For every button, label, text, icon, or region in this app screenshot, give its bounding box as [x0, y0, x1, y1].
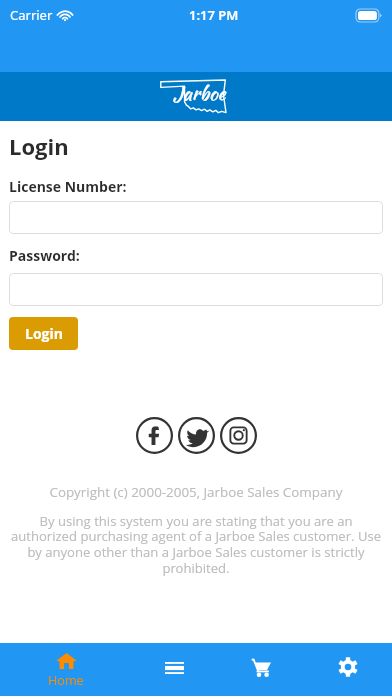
button[interactable]: Instagram [217, 414, 259, 456]
staticText: 1:17 PM [189, 6, 239, 24]
button[interactable]: Home [0, 643, 131, 696]
button[interactable]: Settings [303, 643, 392, 696]
staticText: Jarboe [173, 79, 226, 107]
staticText: Login [9, 131, 69, 161]
button[interactable]: Twitter [175, 414, 217, 456]
button[interactable]: Cart [218, 643, 303, 696]
button[interactable]: Login [9, 317, 78, 350]
button[interactable]: Catalog [131, 643, 218, 696]
staticText: Home [48, 672, 84, 689]
staticText: Copyright (c) 2000-2005, Jarboe Sales Co… [0, 483, 392, 501]
staticText: Password: [9, 246, 80, 265]
button[interactable]: Facebook [133, 414, 175, 456]
staticText: Carrier [10, 6, 53, 24]
staticText: Login [25, 324, 63, 343]
staticText: By using this system you are stating tha… [9, 512, 383, 577]
button[interactable] [9, 273, 383, 306]
button[interactable] [9, 201, 383, 234]
staticText: License Number: [9, 177, 127, 196]
